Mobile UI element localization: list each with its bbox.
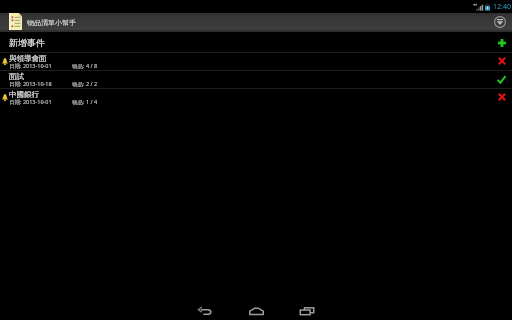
staticText: 與領導會面 [9, 54, 47, 63]
staticText: 日期: 2013-10-01 [9, 62, 52, 70]
staticText: 12:40 [493, 2, 511, 12]
button[interactable]: Home [237, 302, 275, 320]
button[interactable]: 與領導會面 [0, 53, 512, 71]
button[interactable]: 面試 [0, 71, 512, 89]
button[interactable]: Expand menu [490, 13, 509, 32]
staticText: 新增事件 [9, 37, 45, 48]
staticText: 物品: 2 / 2 [72, 80, 98, 88]
staticText: 物品: 1 / 4 [72, 98, 98, 106]
other: Incomplete [498, 57, 506, 65]
staticText: 物品: 4 / 8 [72, 62, 98, 70]
staticText: 中國銀行 [9, 90, 39, 99]
staticText: 物品清單小幫手 [27, 18, 76, 27]
staticText: 日期: 2013-10-01 [9, 98, 52, 106]
other: Complete [497, 75, 506, 84]
button[interactable]: 新增事件 [0, 32, 512, 53]
other: Incomplete [498, 93, 506, 101]
other: Add event [498, 39, 506, 47]
staticText: 面試 [9, 72, 24, 81]
button[interactable]: 中國銀行 [0, 89, 512, 107]
staticText: 日期: 2013-10-18 [9, 80, 52, 88]
button[interactable]: Back [186, 302, 224, 320]
button[interactable]: Recent apps [288, 302, 326, 320]
